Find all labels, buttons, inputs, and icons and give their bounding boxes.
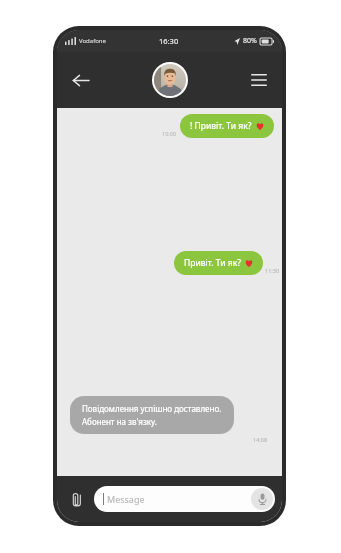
button[interactable]: Повідомлення успішно доставлено. bbox=[70, 396, 234, 434]
staticText: Message bbox=[107, 493, 145, 505]
button[interactable]: Contact profile bbox=[152, 62, 188, 98]
staticText: 10:00 bbox=[162, 130, 177, 137]
staticText: 16:30 bbox=[159, 36, 179, 46]
button[interactable]: Back bbox=[63, 63, 97, 97]
button[interactable]: Voice message bbox=[251, 488, 273, 510]
button[interactable]: Привіт. Ти як? bbox=[174, 251, 263, 275]
button[interactable]: Menu bbox=[242, 63, 276, 97]
staticText: Привіт. Ти як? bbox=[184, 257, 241, 269]
staticText: 14:08 bbox=[253, 436, 268, 443]
staticText: ! Привіт. Ти як? bbox=[190, 120, 252, 132]
staticText: Повідомлення успішно доставлено. bbox=[82, 403, 222, 414]
staticText: Абонент на зв'язку. bbox=[82, 416, 157, 427]
button[interactable]: ! Привіт. Ти як? bbox=[180, 114, 274, 138]
staticText: 11:30 bbox=[265, 267, 280, 274]
button[interactable]: Attach file bbox=[64, 486, 90, 512]
staticText: 80% bbox=[243, 36, 257, 46]
button[interactable]: Message bbox=[94, 486, 275, 512]
staticText: Vodafone bbox=[79, 37, 106, 45]
